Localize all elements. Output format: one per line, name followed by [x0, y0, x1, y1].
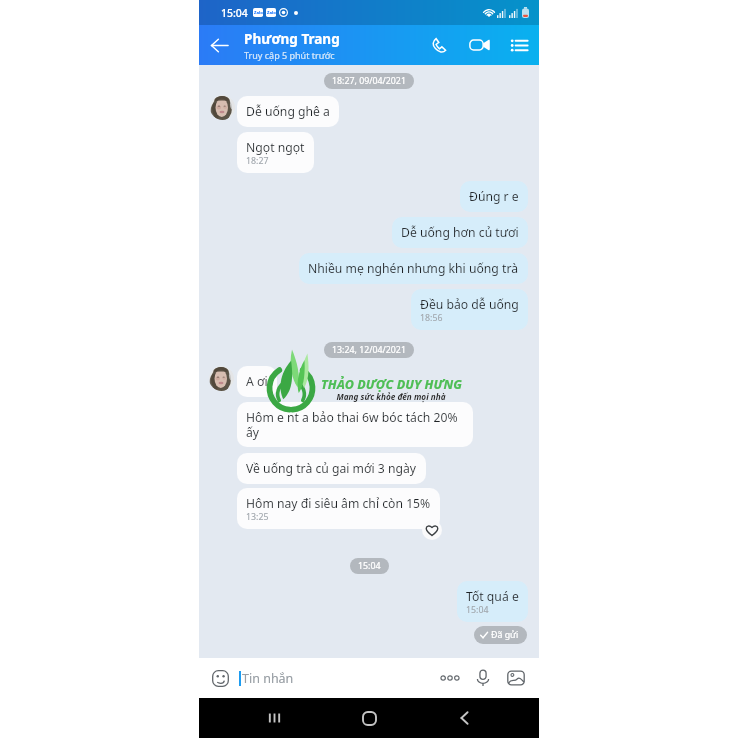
staticText: A ơi [246, 373, 268, 390]
staticText: Hôm e nt a bảo thai 6w bóc tách 20% ấy [246, 409, 464, 440]
button[interactable]: Đã gửi [474, 626, 527, 644]
staticText: Hôm nay đi siêu âm chỉ còn 15% [246, 495, 431, 512]
staticText: Tốt quá e [466, 588, 519, 605]
staticText: 13:24, 12/04/2021 [332, 344, 406, 356]
staticText: Dễ uống hơn củ tươi [401, 224, 519, 241]
staticText: Mang sức khỏe đến mọi nhà [324, 391, 458, 402]
staticText: 18:27 [246, 155, 269, 167]
button[interactable]: Đúng r e [460, 181, 528, 212]
staticText: 13:25 [246, 511, 269, 523]
button[interactable]: Tin nhắn [239, 658, 438, 698]
button[interactable]: Dễ uống ghê a [237, 96, 339, 127]
staticText: Ngọt ngọt [246, 139, 305, 156]
staticText: 18:56 [420, 312, 443, 324]
button[interactable]: Emoji [209, 667, 231, 689]
button[interactable]: Đều bảo dễ uống [411, 289, 528, 330]
button[interactable]: Ngọt ngọt [237, 132, 314, 173]
button[interactable]: Nhiều mẹ nghén nhưng khi uống trà [299, 253, 528, 284]
button[interactable]: Tốt quá e [457, 581, 528, 622]
button[interactable]: Call [419, 25, 459, 65]
staticText: Đúng r e [469, 188, 519, 205]
staticText: 15:04 [358, 560, 381, 572]
button[interactable]: Voice message [471, 666, 495, 690]
button[interactable]: More options [438, 666, 462, 690]
staticText: Đã gửi [491, 629, 519, 641]
staticText: Tin nhắn [242, 670, 294, 687]
staticText: 15:04 [221, 6, 248, 20]
button[interactable]: Back [444, 698, 484, 738]
button[interactable]: Hôm nay đi siêu âm chỉ còn 15% [237, 488, 440, 529]
button[interactable]: Hôm e nt a bảo thai 6w bóc tách 20% ấy [237, 402, 473, 447]
staticText: Zalo [254, 10, 263, 16]
button[interactable]: Về uống trà củ gai mới 3 ngày [237, 453, 426, 484]
staticText: 18:27, 09/04/2021 [332, 75, 406, 87]
staticText: Phương Trang [244, 30, 340, 48]
button[interactable]: Like reaction [422, 520, 442, 540]
button[interactable]: Send photo [504, 666, 528, 690]
button[interactable]: Dễ uống hơn củ tươi [392, 217, 528, 248]
button[interactable]: Home [349, 698, 389, 738]
button[interactable]: Video call [459, 25, 499, 65]
button[interactable]: Recent apps [254, 698, 294, 738]
button[interactable]: Back [199, 25, 239, 65]
staticText: Truy cập 5 phút trước [244, 49, 335, 61]
staticText: Dễ uống ghê a [246, 103, 330, 120]
staticText: Nhiều mẹ nghén nhưng khi uống trà [308, 260, 519, 277]
button[interactable]: Conversation options [499, 25, 539, 65]
button[interactable]: A ơi [237, 366, 277, 397]
staticText: Đều bảo dễ uống [420, 296, 519, 313]
staticText: Zalo [267, 10, 276, 16]
staticText: Về uống trà củ gai mới 3 ngày [246, 460, 417, 477]
staticText: THẢO DƯỢC DUY HƯNG [321, 376, 462, 393]
staticText: 15:04 [466, 604, 489, 616]
